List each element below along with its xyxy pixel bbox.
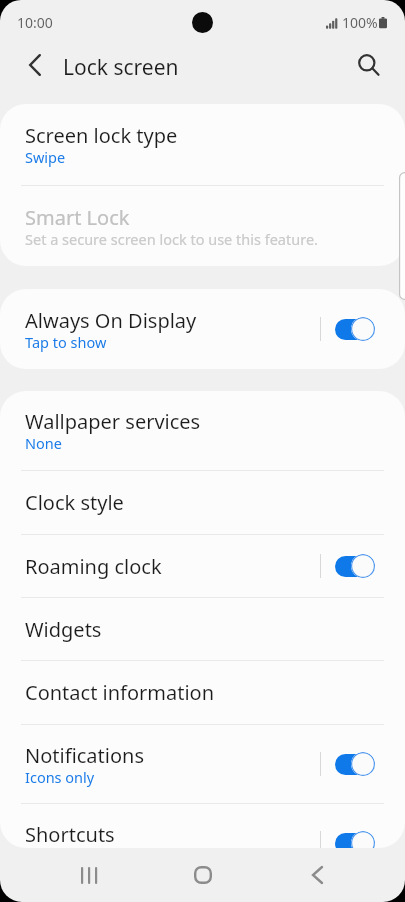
staticText: Always On Display: [25, 307, 197, 334]
button[interactable]: Clock style: [0, 471, 405, 534]
staticText: 10:00: [17, 13, 53, 32]
staticText: Lock screen: [63, 53, 179, 82]
staticText: Notifications: [25, 742, 144, 769]
button[interactable]: Search: [346, 42, 394, 90]
button[interactable]: Home: [177, 849, 229, 901]
button[interactable]: Always On Display: [0, 289, 405, 369]
button[interactable]: Shortcuts: [0, 804, 405, 848]
button[interactable]: Smart Lock: [0, 186, 405, 266]
button[interactable]: Wallpaper services: [0, 391, 405, 470]
button[interactable]: Toggle: [335, 752, 375, 776]
staticText: Set a secure screen lock to use this fea…: [25, 229, 318, 249]
staticText: Contact information: [25, 679, 215, 706]
staticText: Roaming clock: [25, 553, 162, 580]
staticText: Smart Lock: [25, 204, 130, 231]
button[interactable]: Toggle: [335, 554, 375, 578]
button[interactable]: Contact information: [0, 661, 405, 724]
staticText: Widgets: [25, 616, 102, 643]
button[interactable]: Recents: [63, 849, 115, 901]
staticText: Wallpaper services: [25, 408, 201, 435]
staticText: Clock style: [25, 489, 124, 516]
staticText: Swipe: [25, 147, 66, 167]
button[interactable]: Toggle: [335, 317, 375, 341]
staticText: Tap to show: [25, 332, 107, 352]
staticText: Icons only: [25, 767, 95, 787]
button[interactable]: Notifications: [0, 725, 405, 803]
button[interactable]: Back: [11, 41, 59, 89]
button[interactable]: Back: [291, 849, 343, 901]
staticText: Screen lock type: [25, 122, 178, 149]
button[interactable]: Screen lock type: [0, 104, 405, 185]
staticText: Shortcuts: [25, 821, 115, 848]
button[interactable]: Widgets: [0, 598, 405, 660]
button[interactable]: Toggle: [335, 831, 375, 848]
staticText: None: [25, 433, 62, 453]
staticText: 100%: [342, 13, 378, 32]
button[interactable]: Roaming clock: [0, 535, 405, 597]
